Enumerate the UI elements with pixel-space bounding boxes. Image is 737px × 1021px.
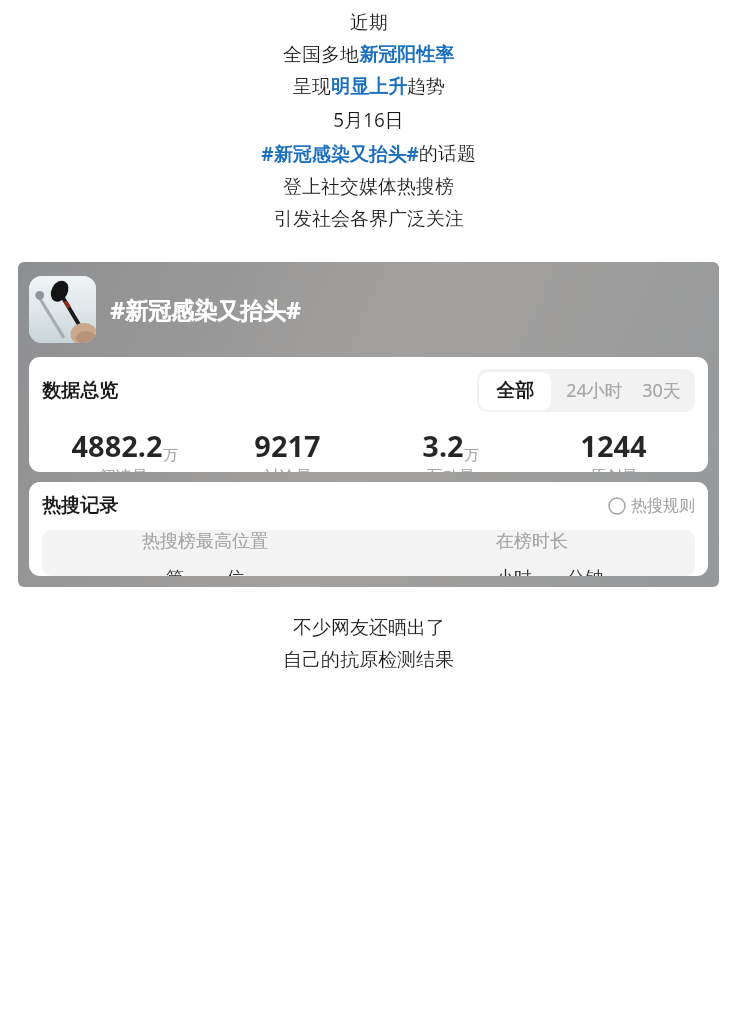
button[interactable]: 24小时 — [553, 369, 636, 412]
button[interactable]: 4882.2 — [42, 426, 206, 472]
staticText: 讨论量 — [264, 467, 312, 472]
staticText: 4882.2 — [71, 426, 163, 465]
staticText: 自己的抗原检测结果 — [283, 648, 454, 672]
staticText: 全部 — [496, 379, 534, 403]
staticText: 阅读量 — [100, 467, 148, 472]
button[interactable]: 30天 — [636, 369, 695, 412]
staticText: 热搜记录 — [42, 494, 118, 518]
staticText: 的话题 — [419, 142, 476, 166]
staticText: 明显上升 — [331, 75, 407, 99]
staticText: 24小时 — [566, 378, 623, 403]
button[interactable]: 话题配图 — [18, 262, 719, 587]
staticText: 小时 — [496, 567, 532, 576]
staticText: 近期 — [350, 11, 388, 35]
staticText: 万 — [163, 446, 178, 465]
staticText: 登上社交媒体热搜榜 — [283, 175, 454, 199]
button[interactable]: 1244 — [532, 426, 695, 472]
staticText: 不少网友还晒出了 — [293, 616, 445, 640]
button[interactable]: 热搜记录 — [29, 482, 708, 576]
staticText: #新冠感染又抬头# — [110, 294, 301, 325]
staticText: 5月16日 — [333, 107, 404, 133]
button[interactable]: 热搜规则 — [608, 496, 695, 516]
staticText: 30天 — [642, 378, 681, 403]
staticText: 9217 — [254, 426, 321, 465]
staticText: 第 — [166, 567, 184, 576]
staticText: 全国多地 — [283, 43, 359, 67]
staticText: 万 — [464, 446, 479, 465]
staticText: 原创量 — [590, 467, 638, 472]
staticText: 热搜规则 — [631, 496, 695, 516]
staticText: 互动量 — [427, 467, 475, 472]
button[interactable]: 话题配图 — [29, 276, 96, 343]
staticText: 1244 — [580, 426, 647, 465]
button[interactable]: 9217 — [206, 426, 369, 472]
button[interactable]: 数据总览 — [29, 357, 708, 472]
staticText: 分钟 — [567, 567, 603, 576]
staticText: 3.2 — [422, 426, 464, 465]
staticText: #新冠感染又抬头# — [261, 141, 419, 167]
staticText: 在榜时长 — [496, 530, 568, 553]
button[interactable]: 全部 — [479, 372, 551, 410]
staticText: 数据总览 — [42, 379, 118, 403]
staticText: 呈现 — [293, 75, 331, 99]
staticText: 热搜榜最高位置 — [142, 530, 268, 553]
staticText: 引发社会各界广泛关注 — [274, 207, 464, 231]
staticText: 位 — [227, 567, 245, 576]
staticText: 新冠阳性率 — [359, 43, 454, 67]
staticText: 趋势 — [407, 75, 445, 99]
button[interactable]: 3.2 — [369, 426, 532, 472]
